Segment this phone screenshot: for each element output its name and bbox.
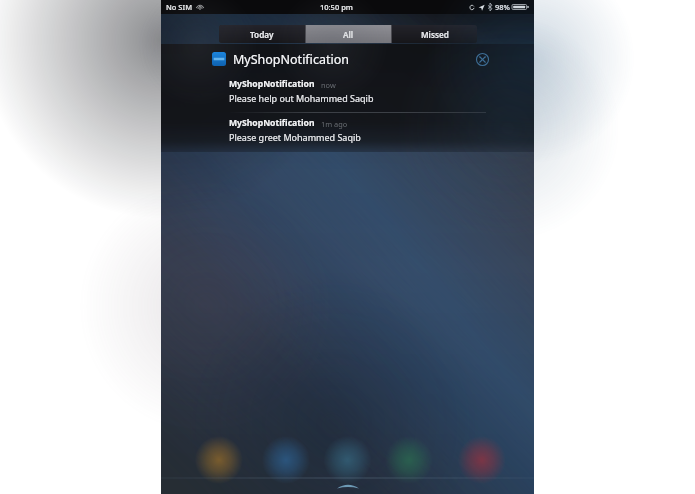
staticText: Today xyxy=(250,29,274,40)
staticText: No SIM xyxy=(166,2,193,12)
button[interactable]: Today xyxy=(219,25,305,43)
staticText: now xyxy=(321,80,336,90)
button[interactable]: Missed xyxy=(392,25,477,43)
staticText: Please help out Mohammed Saqib xyxy=(229,92,374,104)
button[interactable]: Clear notifications xyxy=(475,52,490,67)
staticText: MyShopNotification xyxy=(229,117,315,129)
button[interactable]: Close Notification Center xyxy=(337,482,359,489)
staticText: MyShopNotification xyxy=(229,78,315,90)
staticText: MyShopNotification xyxy=(233,51,349,68)
button[interactable]: All xyxy=(306,25,391,43)
staticText: All xyxy=(343,29,354,40)
button[interactable]: MyShopNotification xyxy=(161,74,534,112)
staticText: Please greet Mohammed Saqib xyxy=(229,131,361,143)
staticText: 1m ago xyxy=(321,119,348,129)
staticText: 10:50 pm xyxy=(320,2,353,12)
button[interactable]: MyShopNotification xyxy=(161,44,534,74)
staticText: 98% xyxy=(495,2,510,12)
staticText: Missed xyxy=(421,29,449,40)
button[interactable]: MyShopNotification xyxy=(161,113,534,151)
